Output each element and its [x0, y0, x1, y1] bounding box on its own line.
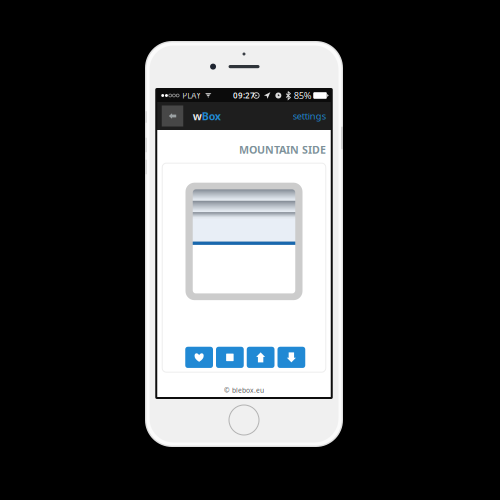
button[interactable]: Back: [162, 105, 183, 126]
staticText: MOUNTAIN SIDE: [239, 142, 326, 157]
button[interactable]: Close: [277, 347, 305, 368]
staticText: 85%: [294, 89, 312, 102]
staticText: w: [193, 109, 202, 123]
staticText: Box: [202, 109, 221, 123]
staticText: settings: [293, 110, 326, 122]
staticText: 09:27: [233, 90, 255, 101]
button[interactable]: Favourite: [185, 347, 213, 368]
staticText: © blebox.eu: [224, 386, 264, 394]
button[interactable]: Stop: [216, 347, 244, 368]
button[interactable]: Open: [247, 347, 275, 368]
button[interactable]: settings: [290, 105, 329, 127]
staticText: PLAY: [182, 90, 201, 101]
